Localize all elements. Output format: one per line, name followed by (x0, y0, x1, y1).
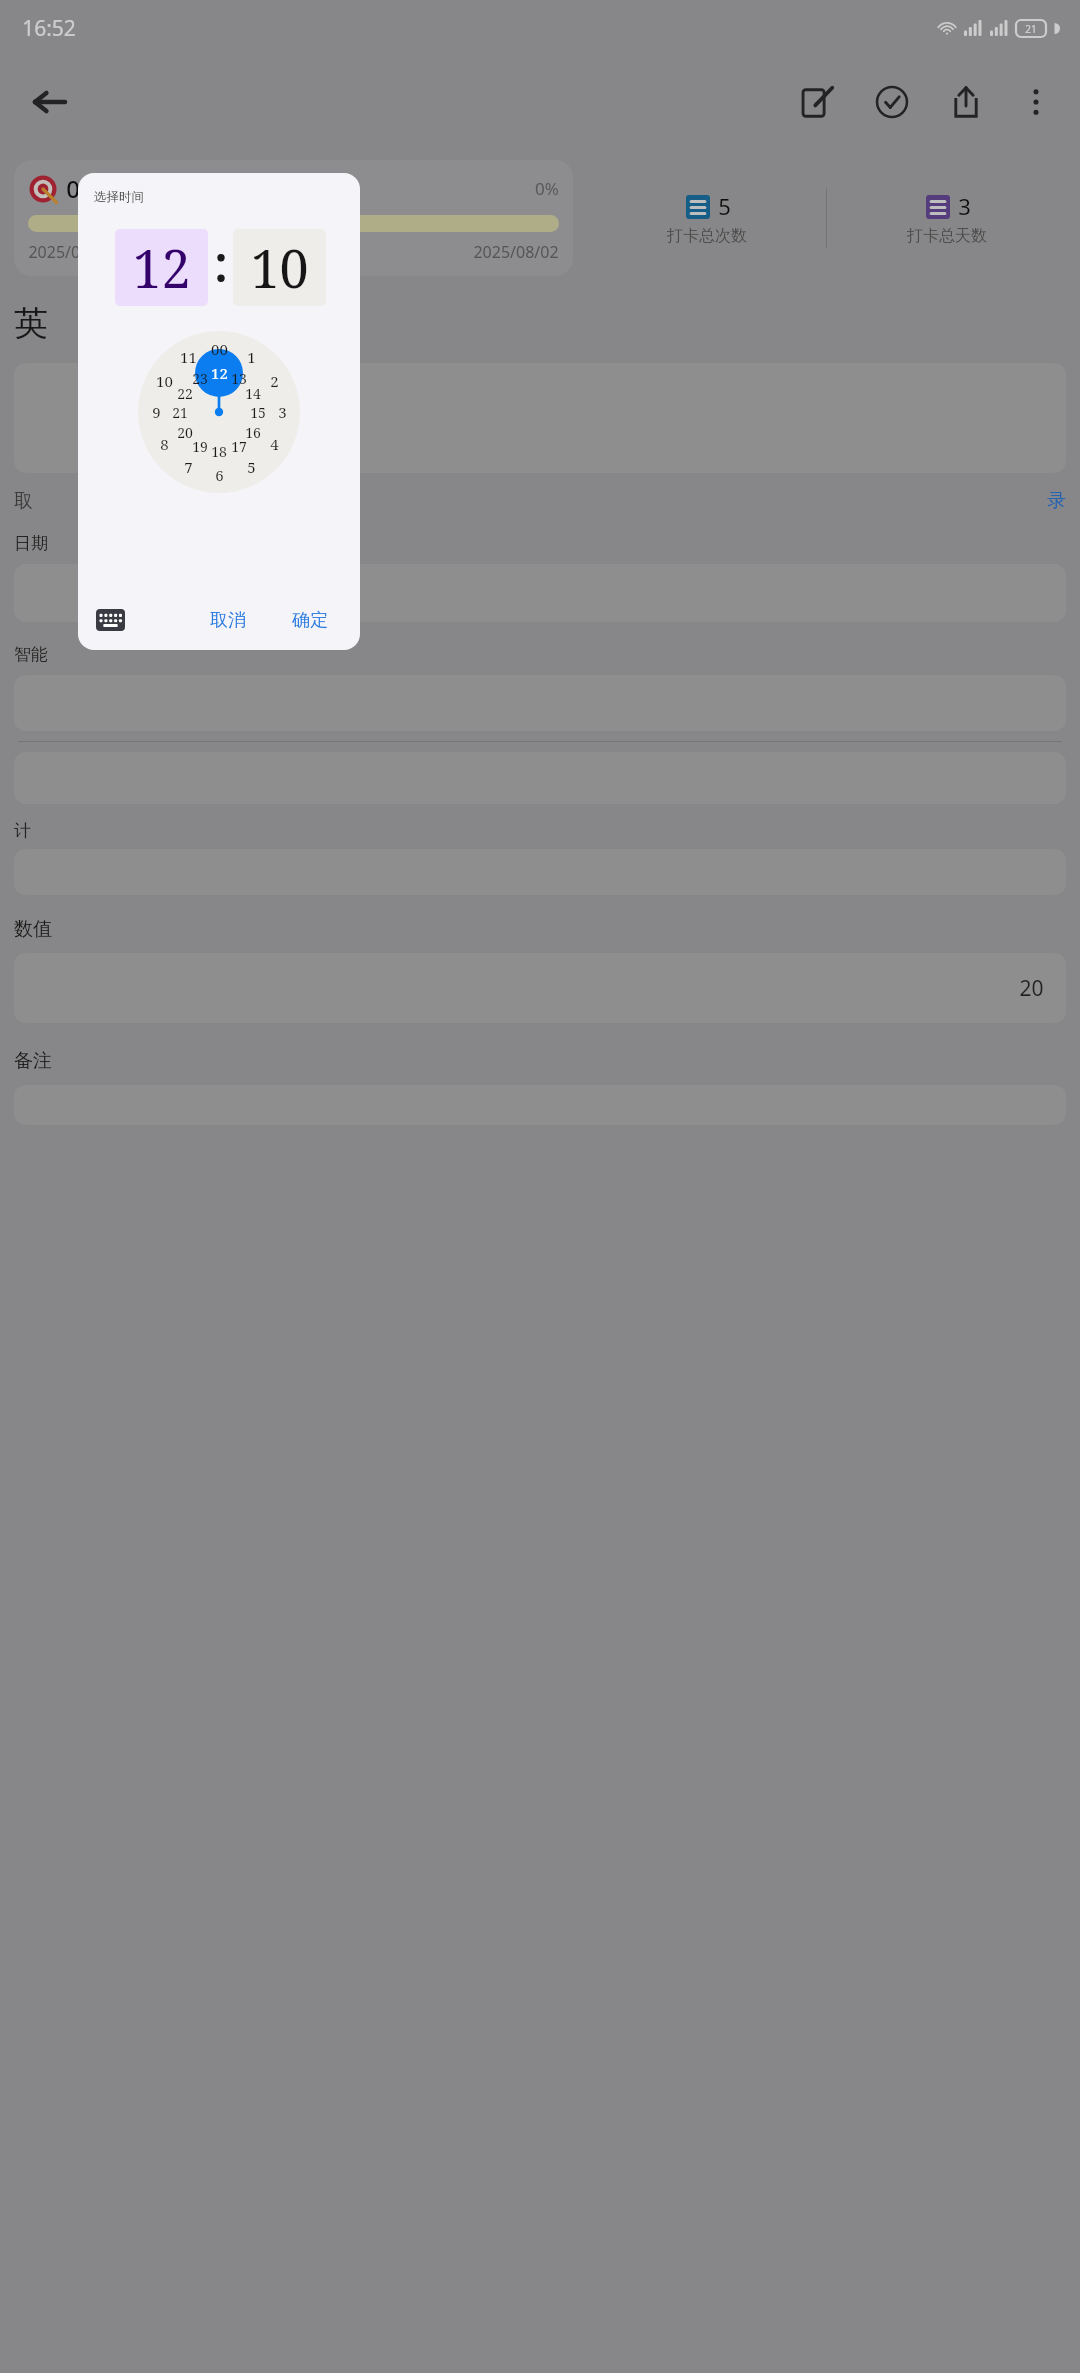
staticText: 14 (245, 384, 261, 403)
staticText: 英 (14, 302, 48, 345)
staticText: 确定 (292, 609, 328, 632)
staticText: 18 (211, 442, 227, 461)
staticText: 12 (211, 363, 228, 383)
button[interactable]: More options (1008, 74, 1064, 130)
staticText: 10 (250, 232, 309, 303)
staticText: 2025/08/02 (473, 241, 559, 263)
staticText: 00 (211, 339, 228, 359)
staticText: 智能 (14, 644, 48, 665)
button[interactable] (14, 564, 1066, 622)
staticText: 23 (192, 369, 208, 388)
staticText: 计 (14, 820, 31, 841)
staticText: 选择时间 (94, 189, 144, 205)
button[interactable]: 取消 (196, 601, 260, 640)
button[interactable]: 0/15 (14, 160, 573, 276)
button[interactable]: Edit (790, 74, 846, 130)
staticText: 16 (245, 423, 261, 442)
staticText: 取消 (210, 609, 246, 632)
staticText: 10 (156, 371, 173, 391)
staticText: 22 (177, 384, 193, 403)
staticText: 20 (123, 177, 143, 200)
button[interactable]: 20 (14, 953, 1066, 1023)
staticText: 打卡总天数 (907, 226, 987, 246)
staticText: 打卡总次数 (667, 226, 747, 246)
button[interactable]: Done (864, 74, 920, 130)
staticText: 6 (215, 465, 224, 485)
button[interactable]: Back (22, 74, 78, 130)
staticText: 3 (278, 402, 287, 422)
staticText: 备注 (14, 1049, 52, 1073)
staticText: 12 (132, 232, 191, 303)
button[interactable]: 5 (587, 191, 826, 246)
staticText: 3 (958, 191, 971, 221)
staticText: 取 (14, 489, 33, 513)
staticText: 19 (192, 437, 208, 456)
staticText: 0/15 (66, 172, 117, 205)
staticText: 11 (180, 347, 197, 367)
button[interactable]: 确定 (278, 601, 342, 640)
button[interactable]: 3 (827, 191, 1066, 246)
staticText: 17 (231, 437, 247, 456)
staticText: 20 (177, 423, 193, 442)
staticText: 13 (231, 369, 247, 388)
staticText: 日期 (14, 533, 48, 554)
staticText: 2025/08/02 (28, 241, 114, 263)
staticText: 录 (1047, 489, 1066, 513)
staticText: 9 (152, 402, 161, 422)
staticText: 4 (270, 434, 279, 454)
button[interactable]: 10 (233, 229, 326, 306)
staticText: 5 (718, 191, 731, 221)
staticText: 8 (160, 434, 169, 454)
staticText: 0% (535, 177, 559, 200)
button[interactable] (14, 363, 1066, 473)
staticText: 21 (1025, 22, 1037, 36)
staticText: 20 (1019, 974, 1044, 1003)
button[interactable]: Share (938, 74, 994, 130)
staticText: 21 (172, 403, 188, 422)
staticText: 1 (247, 347, 256, 367)
staticText: 5 (247, 457, 256, 477)
staticText: 7 (184, 457, 193, 477)
button[interactable]: 12 (115, 229, 208, 306)
button[interactable]: Switch to text input (90, 600, 130, 640)
staticText: 2 (270, 371, 279, 391)
staticText: 数值 (14, 917, 52, 941)
staticText: 15 (250, 403, 266, 422)
staticText: 16:52 (22, 14, 76, 43)
